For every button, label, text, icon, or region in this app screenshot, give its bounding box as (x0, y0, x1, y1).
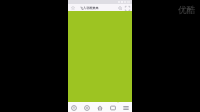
button[interactable]: Favorite (70, 5, 76, 11)
staticText: 飞入动画效果 (80, 6, 99, 10)
button[interactable]: Overview (106, 102, 119, 112)
button[interactable]: Search (117, 5, 123, 11)
button[interactable]: Home (93, 102, 106, 112)
button[interactable]: Menu (119, 102, 132, 112)
staticText: 优酷 (178, 5, 195, 16)
button[interactable]: Fullscreen (124, 5, 130, 11)
button[interactable]: Recent (68, 102, 80, 112)
button[interactable]: Back (80, 102, 93, 112)
